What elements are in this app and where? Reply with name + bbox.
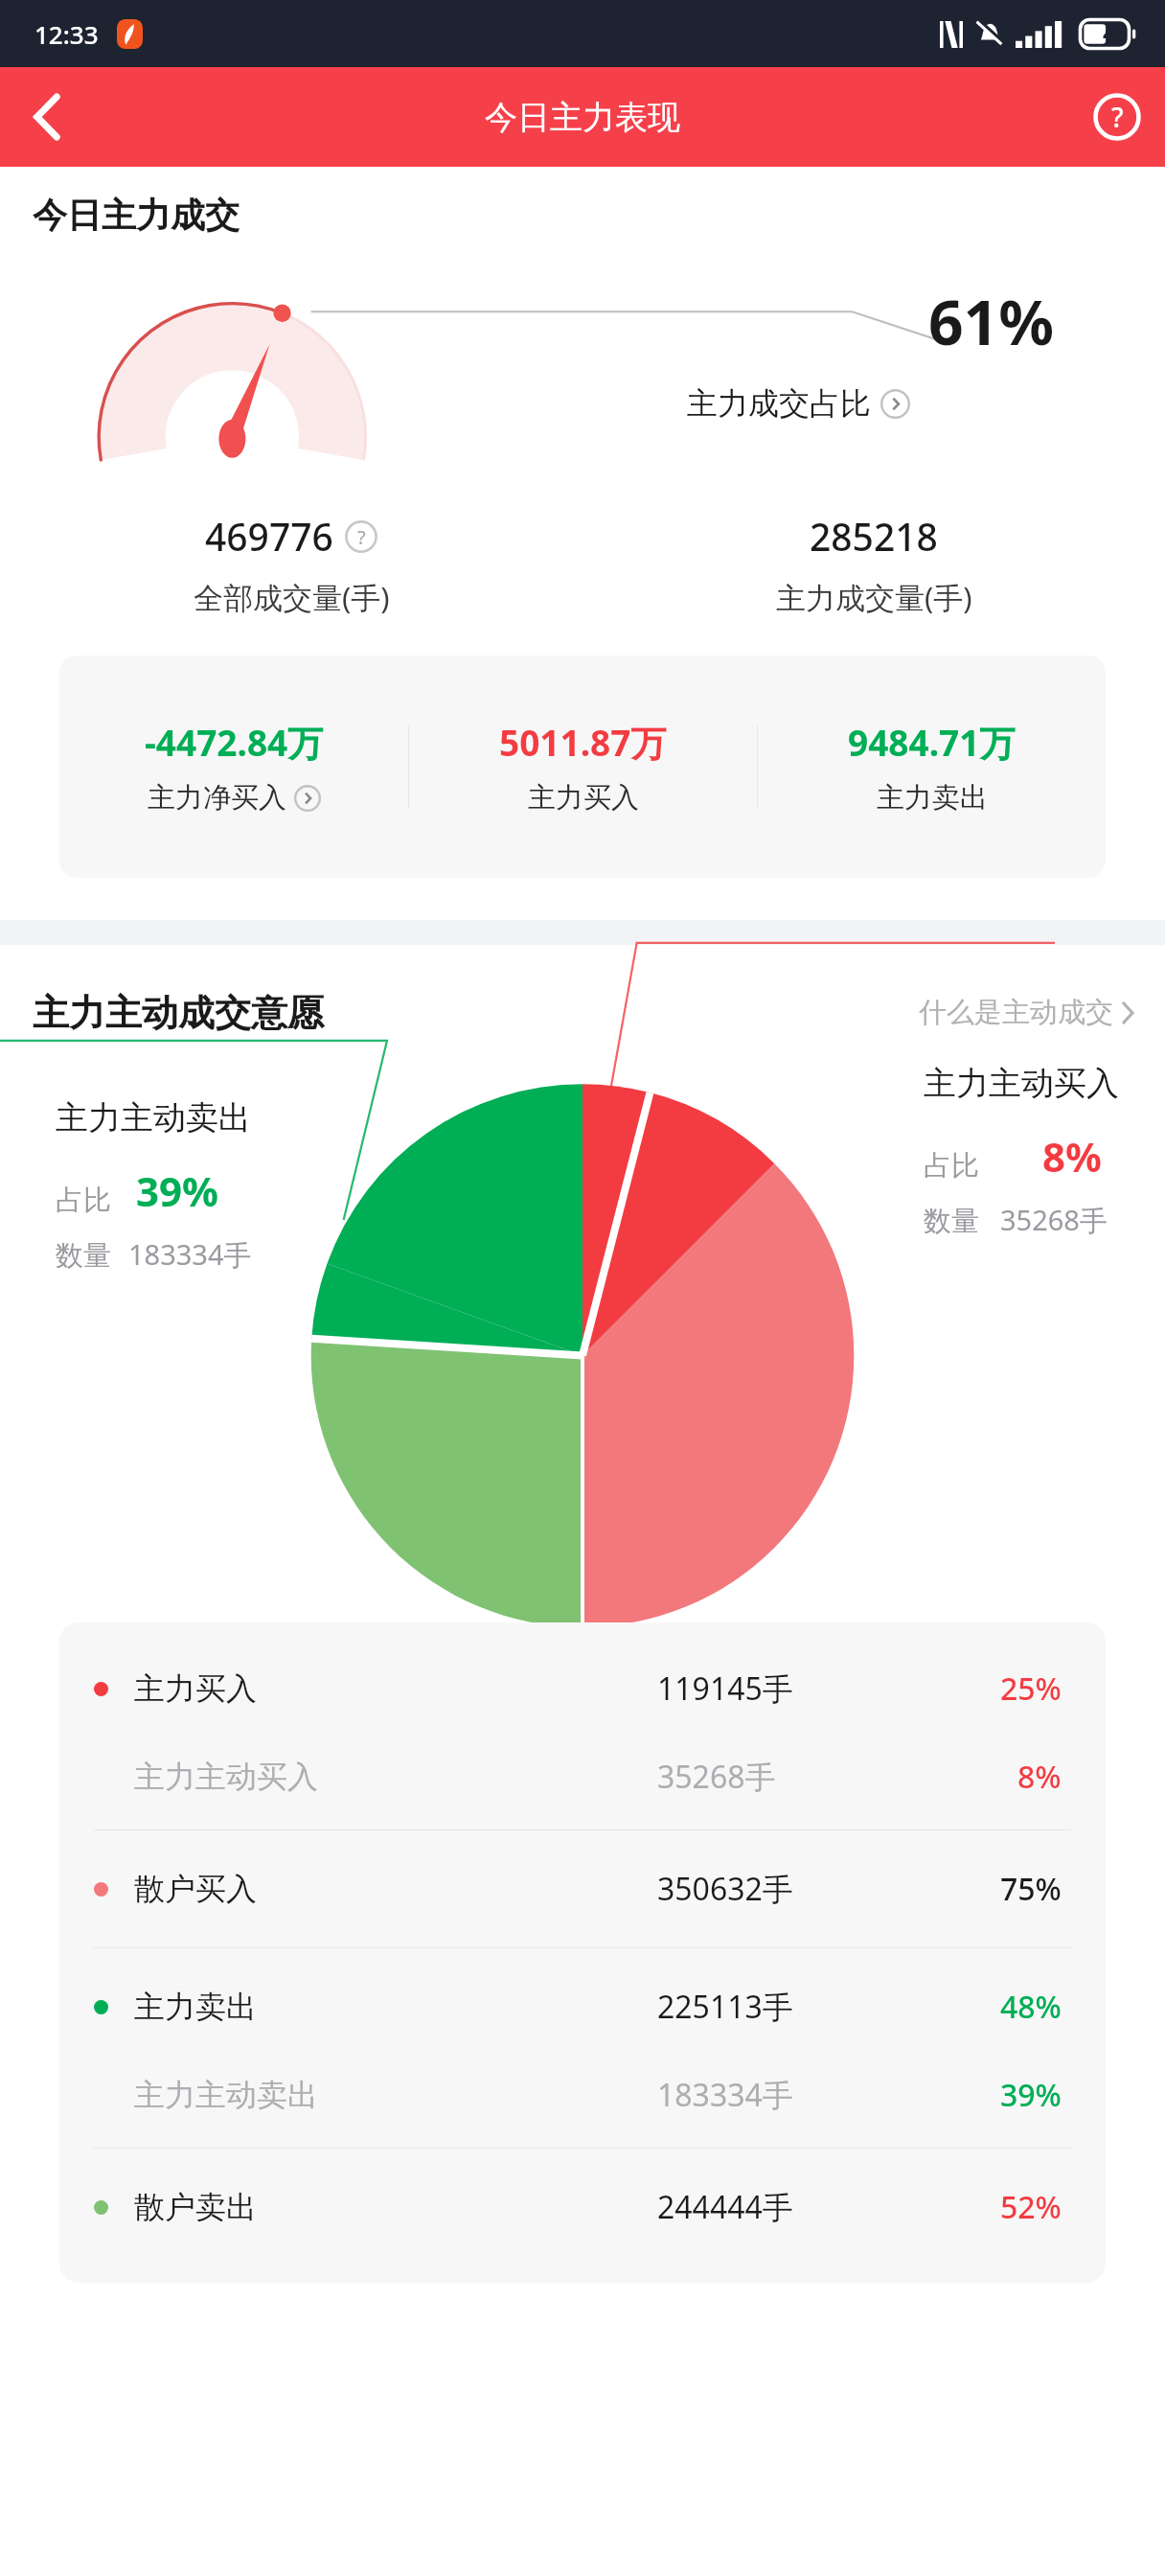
- staticText: 占比: [56, 1183, 111, 1218]
- button[interactable]: 5011.87万: [409, 718, 757, 816]
- staticText: 主力主动卖出: [56, 1097, 251, 1138]
- staticText: 244444手: [657, 2186, 793, 2228]
- staticText: 什么是主动成交: [919, 995, 1113, 1030]
- staticText: 183334手: [128, 1235, 252, 1274]
- staticText: 25%: [1000, 1667, 1062, 1710]
- staticText: 52%: [1000, 2186, 1062, 2228]
- staticText: 主力买入: [134, 1669, 257, 1708]
- staticText: 散户卖出: [134, 2188, 257, 2226]
- staticText: 全部成交量(手): [194, 577, 390, 617]
- button[interactable]: Info: [345, 520, 377, 553]
- staticText: 主力买入: [528, 780, 639, 816]
- staticText: 469776: [205, 511, 333, 562]
- staticText: 主力卖出: [877, 780, 988, 816]
- staticText: 主力主动卖出: [134, 2076, 318, 2114]
- staticText: 主力成交量(手): [776, 577, 972, 617]
- staticText: 主力主动成交意愿: [33, 990, 324, 1036]
- staticText: 61%: [928, 280, 1054, 363]
- staticText: 今日主力表现: [485, 97, 680, 138]
- staticText: 散户买入: [134, 1870, 257, 1908]
- staticText: 占比: [924, 1148, 979, 1184]
- staticText: 8%: [1017, 1756, 1062, 1798]
- button[interactable]: 主力买入: [59, 1642, 1106, 1736]
- staticText: 主力主动买入: [924, 1063, 1119, 1104]
- staticText: 主力净买入: [148, 780, 286, 816]
- staticText: ?: [357, 524, 366, 550]
- button[interactable]: 主力主动卖出: [59, 2054, 1106, 2136]
- staticText: 183334手: [657, 2074, 793, 2116]
- staticText: 9484.71万: [848, 718, 1016, 767]
- staticText: 39%: [136, 1163, 218, 1218]
- staticText: 数量: [56, 1238, 111, 1274]
- button[interactable]: 主力主动买入: [59, 1736, 1106, 1818]
- staticText: -4472.84万: [145, 718, 324, 767]
- staticText: 350632手: [657, 1868, 793, 1910]
- button[interactable]: 主力卖出: [59, 1960, 1106, 2054]
- staticText: 数量: [924, 1204, 979, 1239]
- staticText: 75%: [1000, 1868, 1062, 1910]
- button[interactable]: 主力成交占比: [677, 379, 920, 428]
- staticText: 主力卖出: [134, 1988, 257, 2026]
- staticText: 12:33: [34, 17, 99, 51]
- button[interactable]: 散户卖出: [59, 2160, 1106, 2254]
- staticText: 43: [1103, 20, 1127, 48]
- button[interactable]: 散户买入: [59, 1842, 1106, 1936]
- staticText: 48%: [1000, 1986, 1062, 2028]
- button[interactable]: 9484.71万: [758, 718, 1106, 816]
- staticText: 8%: [1042, 1129, 1102, 1184]
- staticText: 35268手: [1000, 1201, 1108, 1239]
- staticText: 285218: [810, 511, 938, 562]
- staticText: ?: [1111, 99, 1124, 135]
- button[interactable]: 什么是主动成交: [913, 989, 1140, 1036]
- staticText: 主力主动买入: [134, 1758, 318, 1796]
- staticText: 5011.87万: [499, 718, 667, 767]
- button[interactable]: Back: [0, 67, 94, 167]
- staticText: 225113手: [657, 1986, 793, 2028]
- staticText: 主力成交占比: [687, 384, 871, 423]
- staticText: 35268手: [657, 1756, 776, 1798]
- button[interactable]: -4472.84万: [59, 718, 408, 816]
- staticText: 今日主力成交: [33, 194, 240, 237]
- staticText: 119145手: [657, 1667, 793, 1710]
- button[interactable]: Help: [1069, 67, 1165, 167]
- staticText: 39%: [1000, 2074, 1062, 2116]
